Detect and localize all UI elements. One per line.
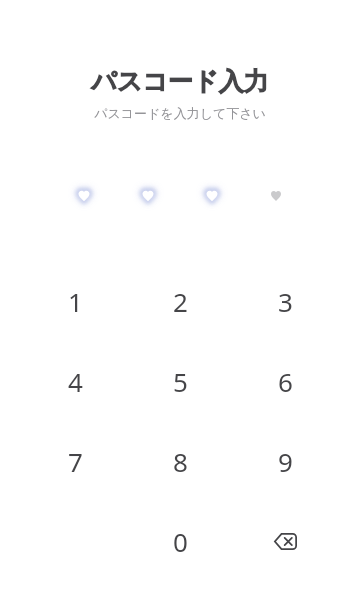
button[interactable]: 6	[233, 341, 338, 421]
staticText: 7	[68, 444, 83, 479]
button[interactable]: 5	[128, 341, 233, 421]
staticText: 5	[173, 364, 188, 399]
staticText: パスコード入力	[0, 66, 360, 97]
staticText: 1	[68, 284, 83, 319]
button[interactable]: 4	[23, 341, 128, 421]
staticText: 8	[173, 444, 188, 479]
button[interactable]: Backspace	[233, 501, 338, 581]
button[interactable]: 7	[23, 421, 128, 501]
staticText: パスコードを入力して下さい	[0, 105, 360, 121]
button[interactable]: 9	[233, 421, 338, 501]
staticText: 2	[173, 284, 188, 319]
button[interactable]: 0	[128, 501, 233, 581]
staticText: 9	[278, 444, 293, 479]
button[interactable]: 1	[23, 261, 128, 341]
button[interactable]: 3	[233, 261, 338, 341]
staticText: 0	[173, 524, 188, 559]
staticText: 3	[278, 284, 293, 319]
button[interactable]: 8	[128, 421, 233, 501]
staticText: 4	[68, 364, 83, 399]
button[interactable]: 2	[128, 261, 233, 341]
staticText: 6	[278, 364, 293, 399]
